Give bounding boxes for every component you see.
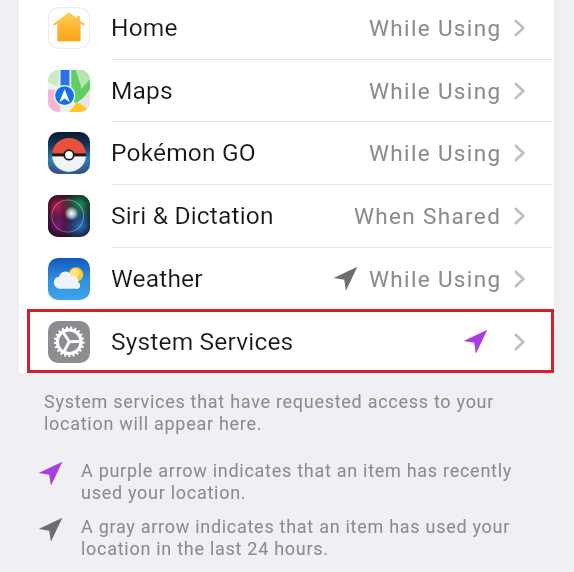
staticText: Weather — [111, 264, 203, 293]
staticText: A purple arrow indicates that an item ha… — [81, 460, 512, 503]
button[interactable]: Pokémon GO — [19, 121, 554, 184]
staticText: While Using — [369, 140, 502, 166]
button[interactable]: Home — [19, 0, 554, 59]
staticText: System services that have requested acce… — [44, 391, 495, 434]
button[interactable]: Maps — [19, 59, 554, 122]
staticText: While Using — [369, 15, 502, 41]
button[interactable]: Weather — [19, 247, 554, 310]
staticText: Maps — [111, 76, 173, 105]
staticText: System Services — [111, 327, 294, 356]
staticText: A gray arrow indicates that an item has … — [81, 516, 511, 559]
button[interactable]: System Services — [19, 310, 554, 373]
staticText: Siri & Dictation — [111, 201, 274, 230]
staticText: While Using — [369, 266, 502, 292]
staticText: While Using — [369, 78, 502, 104]
button[interactable]: Siri & Dictation — [19, 184, 554, 247]
staticText: When Shared — [354, 203, 502, 229]
staticText: Home — [111, 13, 178, 42]
staticText: Pokémon GO — [111, 138, 256, 167]
